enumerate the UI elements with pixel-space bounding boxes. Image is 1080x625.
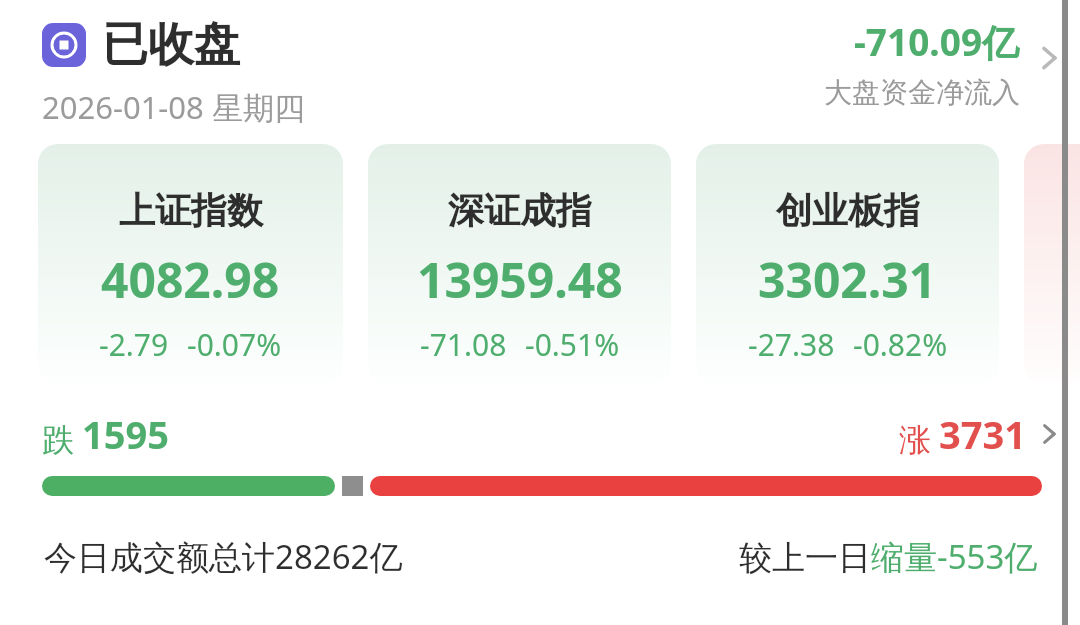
staticText: -27.38 bbox=[748, 324, 835, 365]
staticText: 3731 bbox=[939, 408, 1026, 460]
staticText: -0.82% bbox=[853, 324, 948, 365]
staticText: 4082.98 bbox=[101, 247, 280, 312]
staticText: 1595 bbox=[82, 408, 169, 460]
staticText: 涨 bbox=[899, 420, 931, 460]
other: Market closed bbox=[42, 23, 86, 67]
staticText: 创业板指 bbox=[776, 188, 920, 233]
button[interactable]: 上证指数 bbox=[38, 144, 343, 384]
staticText: 13959.48 bbox=[417, 247, 623, 312]
staticText: -0.07% bbox=[187, 324, 282, 365]
staticText: 3302.31 bbox=[758, 247, 937, 312]
button[interactable]: 创业板指 bbox=[696, 144, 999, 384]
staticText: 上证指数 bbox=[119, 188, 263, 233]
staticText: -71.08 bbox=[420, 324, 507, 365]
staticText: 今日成交额总计28262亿 bbox=[44, 534, 403, 579]
button[interactable] bbox=[1024, 144, 1080, 384]
staticText: 跌 bbox=[42, 420, 74, 460]
button[interactable]: 深证成指 bbox=[368, 144, 671, 384]
button[interactable]: 涨 bbox=[899, 408, 1062, 460]
staticText: 已收盘 bbox=[102, 16, 240, 74]
staticText: 较上一日缩量-553亿 bbox=[739, 534, 1038, 579]
staticText: 2026-01-08 星期四 bbox=[42, 86, 305, 128]
staticText: -0.51% bbox=[525, 324, 620, 365]
button[interactable]: -710.09亿 bbox=[824, 16, 1064, 110]
staticText: -710.09亿 bbox=[854, 16, 1020, 67]
staticText: 深证成指 bbox=[448, 188, 592, 233]
staticText: 大盘资金净流入 bbox=[824, 75, 1020, 110]
staticText: -2.79 bbox=[99, 324, 169, 365]
